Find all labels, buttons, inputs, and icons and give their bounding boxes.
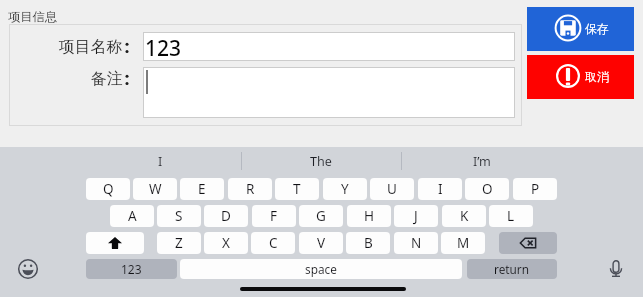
staticText: W bbox=[149, 180, 162, 198]
button[interactable]: Y bbox=[323, 178, 367, 200]
staticText: 项目信息 bbox=[8, 9, 58, 24]
staticText: O bbox=[482, 180, 493, 198]
button[interactable]: I’m bbox=[401, 149, 562, 173]
staticText: G bbox=[316, 207, 326, 225]
staticText: T bbox=[293, 180, 301, 198]
button[interactable]: W bbox=[133, 178, 177, 200]
staticText: 123 bbox=[121, 261, 142, 277]
staticText: C bbox=[269, 234, 278, 252]
button[interactable]: C bbox=[251, 232, 295, 254]
button[interactable]: N bbox=[394, 232, 438, 254]
button[interactable]: P bbox=[513, 178, 557, 200]
button[interactable]: Dictation microphone bbox=[604, 257, 628, 281]
staticText: V bbox=[317, 234, 326, 252]
staticText: S bbox=[175, 207, 183, 225]
staticText: 123 bbox=[145, 34, 182, 63]
staticText: E bbox=[198, 180, 206, 198]
button[interactable]: space bbox=[180, 259, 462, 279]
button[interactable]: S bbox=[157, 205, 201, 227]
staticText: I bbox=[158, 153, 163, 170]
button[interactable]: return bbox=[467, 259, 557, 279]
button[interactable]: B bbox=[346, 232, 390, 254]
button[interactable]: V bbox=[299, 232, 343, 254]
staticText: K bbox=[460, 207, 469, 225]
button[interactable]: I bbox=[418, 178, 462, 200]
staticText: 备注 bbox=[91, 69, 123, 89]
button[interactable]: Q bbox=[86, 178, 130, 200]
button[interactable]: 保存 bbox=[527, 7, 634, 51]
button[interactable]: Backspace bbox=[499, 232, 557, 254]
staticText: M bbox=[457, 234, 470, 252]
button[interactable]: R bbox=[228, 178, 272, 200]
staticText: 项目名称 bbox=[59, 37, 123, 57]
staticText: B bbox=[364, 234, 373, 252]
button[interactable]: Emoji keyboard bbox=[16, 257, 40, 281]
button[interactable]: I bbox=[80, 149, 241, 173]
button[interactable]: Shift bbox=[86, 232, 144, 254]
staticText: L bbox=[507, 207, 515, 225]
button[interactable]: 取消 bbox=[527, 55, 634, 99]
button[interactable]: E bbox=[180, 178, 224, 200]
staticText: 保存 bbox=[585, 22, 609, 37]
button[interactable]: U bbox=[370, 178, 414, 200]
staticText: return bbox=[494, 261, 530, 277]
staticText: F bbox=[270, 207, 278, 225]
staticText: Y bbox=[341, 180, 349, 198]
button[interactable]: G bbox=[299, 205, 343, 227]
staticText: R bbox=[246, 180, 255, 198]
staticText: Z bbox=[175, 234, 183, 252]
staticText: D bbox=[221, 207, 231, 225]
button[interactable]: K bbox=[442, 205, 486, 227]
button[interactable]: Z bbox=[157, 232, 201, 254]
staticText: X bbox=[222, 234, 230, 252]
button[interactable]: H bbox=[347, 205, 391, 227]
staticText: P bbox=[531, 180, 540, 198]
staticText: N bbox=[411, 234, 422, 252]
button[interactable]: O bbox=[465, 178, 509, 200]
staticText: Q bbox=[103, 180, 114, 198]
staticText: space bbox=[305, 261, 337, 277]
staticText: J bbox=[414, 207, 418, 225]
button[interactable]: A bbox=[110, 205, 154, 227]
button[interactable]: T bbox=[275, 178, 319, 200]
staticText: H bbox=[364, 207, 375, 225]
staticText: A bbox=[128, 207, 137, 225]
button[interactable]: X bbox=[204, 232, 248, 254]
button[interactable]: 123 bbox=[143, 32, 515, 61]
button[interactable]: The bbox=[241, 149, 401, 173]
staticText: U bbox=[387, 180, 397, 198]
staticText: The bbox=[310, 153, 332, 170]
staticText: 取消 bbox=[585, 70, 609, 85]
button[interactable] bbox=[143, 67, 515, 118]
button[interactable]: M bbox=[441, 232, 485, 254]
button[interactable]: 123 bbox=[86, 259, 177, 279]
staticText: I’m bbox=[473, 153, 491, 170]
button[interactable]: F bbox=[252, 205, 296, 227]
button[interactable]: D bbox=[204, 205, 248, 227]
button[interactable]: L bbox=[489, 205, 533, 227]
button[interactable]: J bbox=[394, 205, 438, 227]
staticText: I bbox=[438, 180, 443, 198]
